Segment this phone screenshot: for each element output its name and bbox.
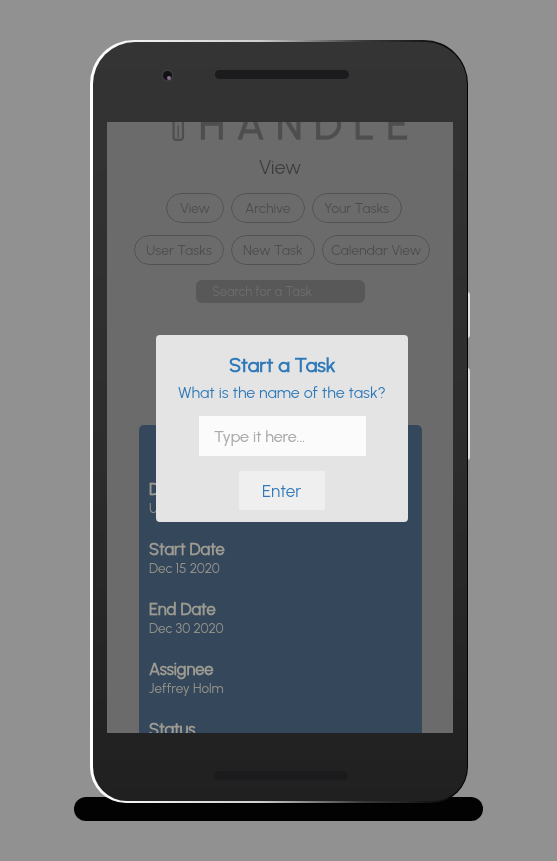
staticText: Start a Task <box>229 353 336 377</box>
staticText: New Task <box>243 242 303 259</box>
button[interactable]: Description <box>139 425 422 733</box>
staticText: Update the logo <box>149 500 246 516</box>
staticText: View <box>107 155 453 179</box>
button[interactable]: View <box>166 193 224 223</box>
staticText: Enter <box>262 481 302 501</box>
button[interactable]: Type it here... <box>199 416 366 456</box>
staticText: User Tasks <box>146 242 212 259</box>
staticText: Description <box>149 479 230 499</box>
staticText: Start Date <box>149 539 225 559</box>
staticText: Dec 30 2020 <box>149 620 224 636</box>
staticText: End Date <box>149 599 216 619</box>
staticText: Search for a Task <box>212 284 312 300</box>
button[interactable]: Calendar View <box>322 235 430 265</box>
button[interactable]: New Task <box>231 235 315 265</box>
button[interactable]: Search for a Task <box>196 280 365 303</box>
staticText: Status <box>149 719 196 733</box>
staticText: Assignee <box>149 659 214 679</box>
staticText: HANDLE <box>199 122 421 149</box>
button[interactable]: User Tasks <box>134 235 224 265</box>
staticText: What is the name of the task? <box>178 383 386 402</box>
staticText: View <box>180 200 210 217</box>
button[interactable]: Archive <box>231 193 305 223</box>
staticText: Archive <box>245 200 291 217</box>
staticText: Dec 15 2020 <box>149 560 220 576</box>
staticText: Jeffrey Holm <box>149 680 224 696</box>
button[interactable]: Enter <box>239 471 325 510</box>
staticText: Total Tasks: 5 | Tasks Complete: 1 <box>107 366 453 382</box>
staticText: Type it here... <box>214 427 306 446</box>
staticText: Calendar View <box>331 242 422 259</box>
button[interactable]: Your Tasks <box>312 193 402 223</box>
staticText: Your Tasks <box>324 200 390 217</box>
